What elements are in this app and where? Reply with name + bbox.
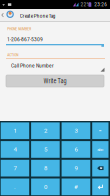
staticText: 9 [74, 165, 77, 172]
staticText: 1-206-867-5309 [7, 36, 43, 43]
button[interactable]: Back [0, 9, 18, 22]
button[interactable]: 3 [62, 122, 90, 139]
button[interactable]: 9 [62, 160, 90, 176]
staticText: 1 [13, 127, 16, 134]
button[interactable]: 1 [1, 122, 29, 139]
staticText: Create Phone Tag [20, 13, 56, 19]
button[interactable]: 5 [31, 141, 60, 158]
button[interactable]: Write Tag [6, 75, 104, 87]
staticText: Write Tag [43, 77, 66, 85]
staticText: Call Phone Number [11, 62, 54, 69]
staticText: 5 [44, 146, 47, 153]
staticText: 6 [74, 146, 77, 153]
button[interactable]: Delete [92, 160, 108, 176]
staticText: 0 [44, 183, 47, 190]
staticText: 8 [44, 165, 47, 172]
staticText: 4 [13, 146, 16, 153]
staticText: . [14, 183, 16, 190]
staticText: abc [97, 147, 103, 152]
button[interactable]: 6 [62, 141, 90, 158]
staticText: # [74, 183, 78, 190]
button[interactable]: # [62, 178, 90, 195]
button[interactable]: 2 [31, 122, 60, 139]
button[interactable]: . [1, 178, 29, 195]
button[interactable]: Call Phone Number [0, 59, 110, 75]
button[interactable]: 0 [31, 178, 60, 195]
button[interactable]: 7 [1, 160, 29, 176]
staticText: 22% [80, 2, 89, 7]
staticText: 2 [44, 127, 47, 134]
staticText: 7 [13, 165, 16, 172]
staticText: 23:26 [94, 2, 107, 7]
staticText: PHONE NUMBER [7, 27, 31, 31]
staticText: ACTION [7, 53, 18, 57]
button[interactable]: - [92, 122, 108, 139]
staticText: 3 [74, 127, 77, 134]
button[interactable]: Return [92, 178, 108, 195]
button[interactable]: 4 [1, 141, 29, 158]
button[interactable]: 8 [31, 160, 60, 176]
button[interactable]: abc [92, 141, 108, 158]
